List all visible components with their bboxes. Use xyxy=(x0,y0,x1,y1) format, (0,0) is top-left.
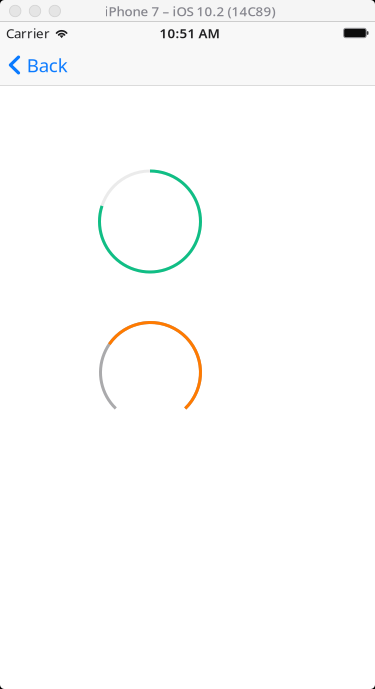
staticText: Back xyxy=(27,53,68,77)
staticText: 10:51 AM xyxy=(159,24,219,42)
staticText: Carrier xyxy=(6,24,50,42)
button[interactable]: Back xyxy=(0,43,78,87)
staticText: iPhone 7 – iOS 10.2 (14C89) xyxy=(104,2,275,20)
